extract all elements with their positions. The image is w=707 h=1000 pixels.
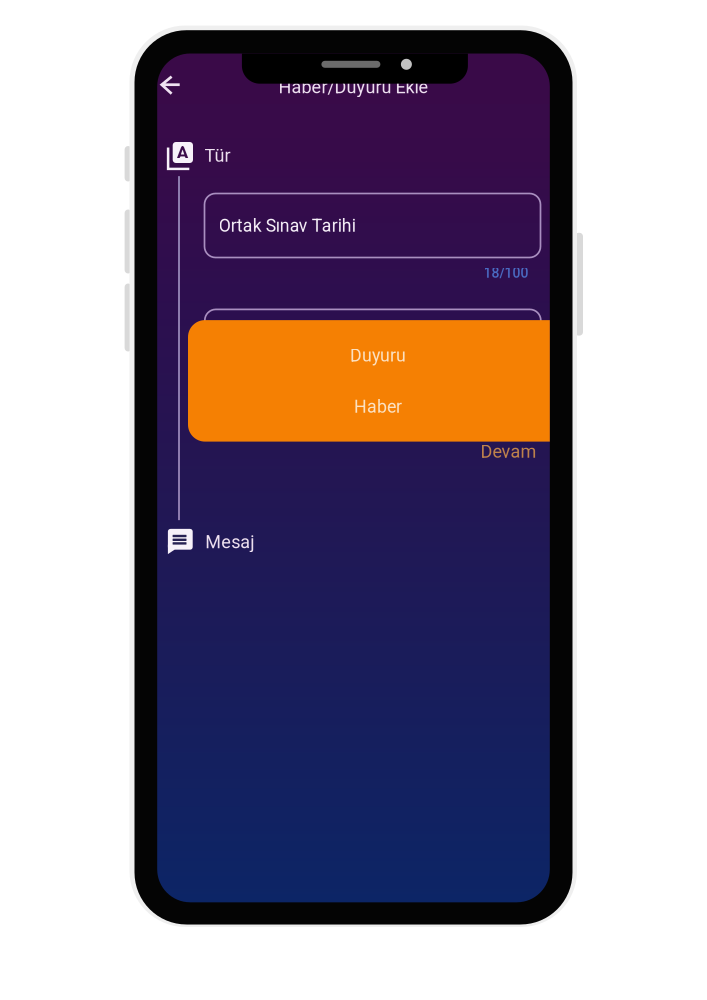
staticText: Duyuru: [350, 345, 406, 366]
staticText: Devam: [480, 441, 536, 462]
button[interactable]: Back: [158, 63, 202, 107]
staticText: 18/100: [483, 265, 528, 281]
staticText: Ortak Sınav Tarihi: [219, 215, 356, 236]
staticText: Tür: [205, 145, 231, 166]
staticText: A: [177, 142, 189, 163]
staticText: Mesaj: [205, 531, 254, 553]
button[interactable]: Ortak Sınav Tarihi: [204, 193, 540, 257]
button[interactable]: Devam: [204, 441, 536, 461]
staticText: Haber: [354, 396, 402, 417]
button[interactable]: Haber: [188, 381, 568, 432]
button[interactable]: Tür seç: [205, 309, 541, 373]
staticText: Haber/Duyuru Ekle: [278, 76, 428, 98]
button[interactable]: Duyuru: [188, 330, 568, 381]
